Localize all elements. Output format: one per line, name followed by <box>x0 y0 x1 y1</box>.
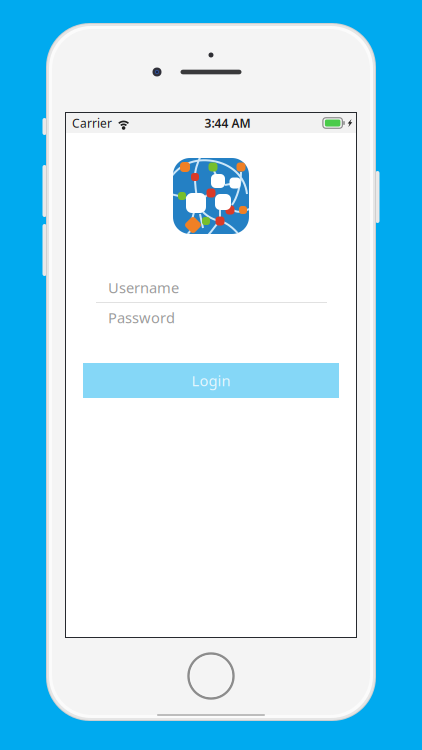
staticText: Login <box>191 371 230 390</box>
staticText: Password <box>108 308 175 327</box>
staticText: 3:44 AM <box>204 115 250 131</box>
button[interactable]: Username <box>96 273 327 302</box>
staticText: Username <box>108 278 179 297</box>
staticText: Carrier <box>72 115 112 131</box>
button[interactable]: Login <box>83 363 339 398</box>
button[interactable]: Password <box>96 303 327 332</box>
